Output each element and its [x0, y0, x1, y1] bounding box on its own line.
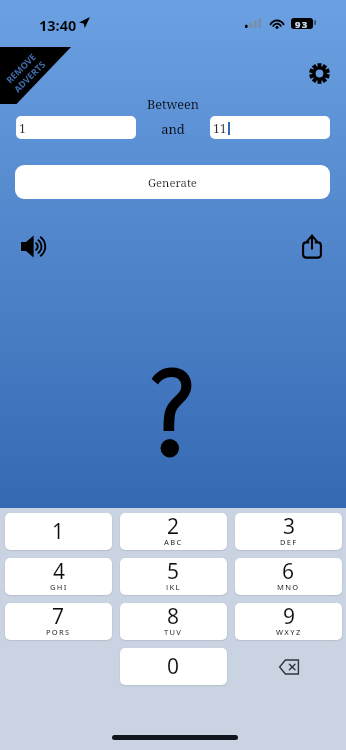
staticText: Generate	[148, 175, 197, 190]
staticText: 13:40	[39, 15, 77, 35]
button[interactable]: 0	[120, 648, 227, 685]
staticText: 3	[283, 513, 296, 541]
staticText: ABC	[164, 537, 183, 545]
staticText: MNO	[277, 582, 300, 590]
staticText: ADVERTS	[11, 58, 48, 95]
staticText: 2	[167, 513, 180, 541]
staticText: and	[0, 120, 346, 138]
staticText: 8	[167, 603, 180, 631]
staticText: 5	[167, 558, 180, 586]
staticText: GHI	[50, 582, 68, 590]
staticText: DEF	[280, 537, 298, 545]
button[interactable]: 8	[120, 603, 227, 640]
button[interactable]: Generate	[15, 165, 330, 199]
button[interactable]: 2	[120, 513, 227, 550]
staticText: PQRS	[46, 627, 71, 635]
button[interactable]: 9	[235, 603, 342, 640]
staticText: Between	[0, 96, 346, 113]
button[interactable]: Settings	[304, 58, 335, 89]
staticText: 6	[282, 558, 295, 586]
staticText: 1	[19, 120, 26, 136]
button[interactable]: 6	[235, 558, 342, 595]
button[interactable]: 1	[16, 116, 136, 139]
staticText: 9	[283, 603, 296, 631]
staticText: REMOVE	[3, 50, 38, 85]
staticText: JKL	[166, 582, 181, 590]
button[interactable]: Share	[293, 227, 331, 265]
staticText: 1	[52, 517, 65, 546]
staticText: 93	[295, 18, 309, 29]
button[interactable]: 7	[5, 603, 112, 640]
button[interactable]: 4	[5, 558, 112, 595]
staticText: 7	[52, 603, 65, 631]
staticText: 0	[167, 652, 180, 681]
button[interactable]: Speak	[14, 227, 52, 265]
button[interactable]: Remove adverts	[0, 47, 71, 104]
button[interactable]: 11	[210, 116, 330, 139]
button[interactable]: Delete	[235, 648, 342, 685]
button[interactable]: 3	[235, 513, 342, 550]
staticText: 4	[53, 558, 66, 586]
button[interactable]: 5	[120, 558, 227, 595]
button[interactable]: 1	[5, 513, 112, 550]
staticText: TUV	[164, 627, 183, 635]
staticText: WXYZ	[276, 627, 302, 635]
staticText: 11	[213, 120, 227, 136]
